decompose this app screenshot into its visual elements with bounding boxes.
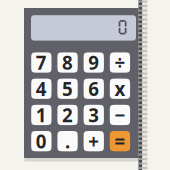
staticText: 7 (36, 50, 47, 75)
staticText: − (114, 103, 125, 127)
button[interactable]: 1 (31, 105, 51, 125)
staticText: 3 (88, 103, 99, 127)
staticText: 0 (36, 129, 47, 154)
button[interactable]: 7 (31, 52, 51, 73)
staticText: 5 (62, 76, 73, 101)
staticText: 2 (62, 103, 73, 127)
staticText: + (88, 129, 99, 154)
staticText: x (114, 76, 125, 101)
staticText: 9 (88, 50, 99, 75)
button[interactable]: ÷ (110, 52, 130, 73)
button[interactable]: 9 (84, 52, 104, 73)
button[interactable]: 5 (57, 79, 78, 99)
staticText: 6 (88, 76, 99, 101)
button[interactable]: x (110, 79, 130, 99)
staticText: = (114, 129, 125, 154)
staticText: 4 (36, 76, 47, 101)
button[interactable]: + (84, 131, 104, 151)
button[interactable]: 6 (84, 79, 104, 99)
staticText: 1 (36, 103, 47, 127)
button[interactable]: 4 (31, 79, 51, 99)
staticText: 8 (62, 50, 73, 75)
staticText: ÷ (114, 50, 125, 75)
button[interactable]: 2 (57, 105, 78, 125)
button[interactable]: 8 (57, 52, 78, 73)
staticText: . (65, 129, 70, 154)
button[interactable]: − (110, 105, 130, 125)
button[interactable]: 0 (31, 131, 51, 151)
button[interactable]: 3 (84, 105, 104, 125)
button[interactable]: . (57, 131, 78, 151)
button[interactable]: = (110, 131, 130, 151)
